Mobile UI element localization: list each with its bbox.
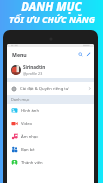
staticText: Hình ảnh [21,108,39,114]
staticText: TỐI ƯU CHỨC NĂNG [9,13,95,25]
staticText: Cài đặt & Quyền riêng tư [20,86,69,92]
staticText: @profile 23 [23,71,43,76]
button[interactable]: Hình ảnh [7,104,94,117]
staticText: Thành viên [21,160,43,166]
button[interactable]: Sirinadtin [7,61,94,78]
staticText: DANH MỤC [21,0,82,15]
staticText: Menu [12,51,27,58]
button[interactable]: Video [7,117,94,130]
staticText: Sirinadtin [23,64,46,70]
button[interactable]: Âm nhạc [7,130,94,143]
staticText: Âm nhạc [21,134,39,140]
button[interactable]: Bạn bè [7,143,94,156]
staticText: Bạn bè [21,147,35,153]
staticText: Danh mục [11,97,30,102]
button[interactable]: Search [76,50,84,58]
staticText: Video [21,121,33,127]
button[interactable]: Create [84,50,92,58]
button[interactable]: Thành viên [7,156,94,169]
button[interactable]: Cài đặt & Quyền riêng tư [7,82,94,95]
